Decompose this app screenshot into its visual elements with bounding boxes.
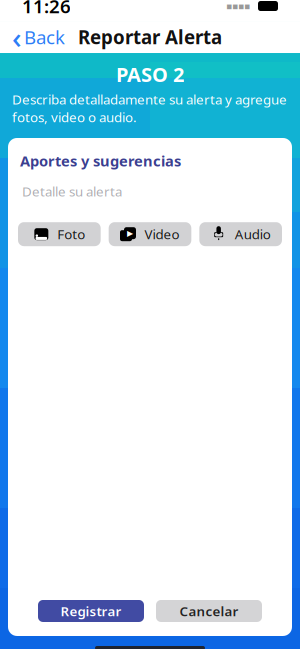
staticText: Video bbox=[144, 225, 179, 243]
staticText: ▪▪▪▪ bbox=[226, 1, 250, 11]
button[interactable]: Registrar bbox=[38, 600, 144, 622]
button[interactable]: Foto bbox=[18, 222, 101, 246]
staticText: Aportes y sugerencias bbox=[20, 151, 181, 170]
staticText: Detalle su alerta bbox=[22, 182, 122, 200]
staticText: ‹ bbox=[12, 17, 22, 56]
staticText: ▶ bbox=[127, 229, 133, 238]
staticText: Back bbox=[24, 25, 65, 49]
staticText: Registrar bbox=[60, 602, 121, 620]
button[interactable]: ‹ bbox=[4, 13, 73, 60]
staticText: Audio bbox=[235, 225, 271, 243]
staticText: Describa detalladamente su alerta y agre… bbox=[12, 91, 287, 126]
staticText: Reportar Alerta bbox=[78, 25, 222, 49]
button[interactable]: Audio bbox=[199, 222, 282, 246]
button[interactable]: Cancelar bbox=[156, 600, 262, 622]
staticText: Foto bbox=[57, 225, 85, 243]
button[interactable]: ▶ bbox=[109, 222, 191, 246]
staticText: PASO 2 bbox=[116, 61, 184, 88]
staticText: Cancelar bbox=[179, 602, 238, 620]
staticText: 11:26 bbox=[22, 0, 71, 18]
